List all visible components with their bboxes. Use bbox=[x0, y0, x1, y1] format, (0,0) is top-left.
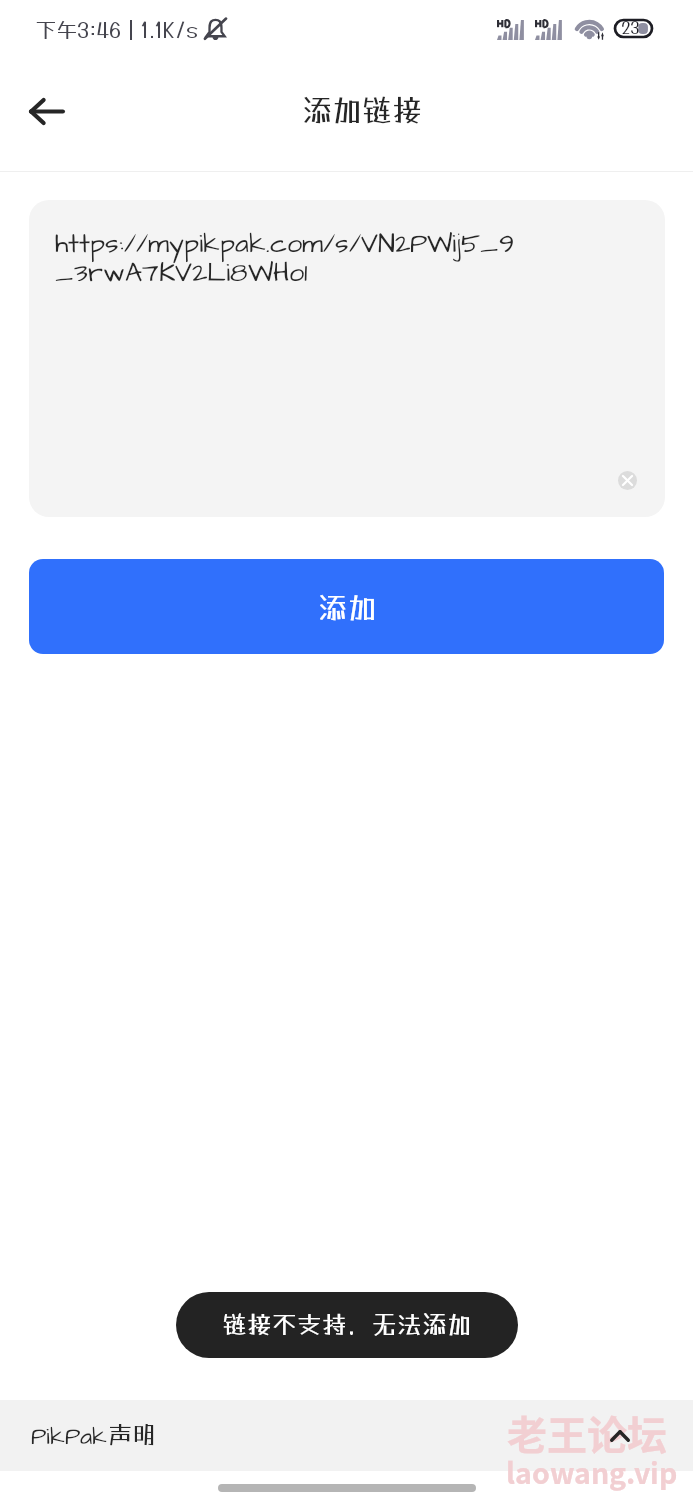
button[interactable]: Clear text bbox=[608, 461, 646, 499]
button[interactable]: https://mypikpak.com/s/VN2PWij5_9_3rwA7K… bbox=[29, 200, 665, 517]
button[interactable]: Back bbox=[12, 76, 82, 146]
staticText: 链接不支持，无法添加 bbox=[176, 1292, 518, 1358]
button[interactable]: PikPak声明 bbox=[0, 1400, 693, 1471]
button[interactable]: Expand PikPak statement bbox=[596, 1412, 644, 1460]
staticText: 下午3:46 | 1.1K/s bbox=[0, 0, 693, 62]
button[interactable]: 添加 bbox=[29, 559, 664, 654]
